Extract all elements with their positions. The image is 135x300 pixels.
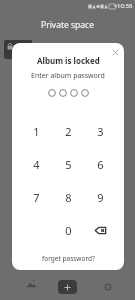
button[interactable]: 9 [84, 181, 116, 214]
button[interactable]: 0 [52, 214, 84, 247]
staticText: 8 [65, 190, 72, 205]
staticText: 10:56 [117, 2, 133, 10]
staticText: 0 [65, 223, 72, 238]
staticText: 4 [33, 157, 40, 172]
button[interactable]: Settings [94, 274, 122, 300]
button[interactable]: 1 [20, 115, 52, 148]
button[interactable]: 7 [20, 181, 52, 214]
staticText: 1 [33, 124, 40, 139]
staticText: 7 [33, 190, 40, 205]
button[interactable]: Add [58, 280, 77, 294]
staticText: Private space [41, 19, 94, 31]
staticText: 2 [65, 124, 72, 139]
staticText: Album is locked [37, 55, 100, 66]
button[interactable]: forget password? [36, 252, 101, 265]
button[interactable]: 4 [20, 148, 52, 181]
staticText: Enter album password [31, 71, 105, 81]
button[interactable]: 5 [52, 148, 84, 181]
staticText: 3 [97, 124, 104, 139]
staticText: 6 [97, 157, 104, 172]
button[interactable]: 2 [52, 115, 84, 148]
button[interactable]: Close [109, 46, 121, 58]
staticText: forget password? [42, 254, 95, 263]
button[interactable]: 3 [84, 115, 116, 148]
button[interactable]: Photos [17, 274, 45, 300]
button[interactable]: 6 [84, 148, 116, 181]
button[interactable]: 8 [52, 181, 84, 214]
button[interactable]: Backspace [84, 214, 116, 247]
staticText: 5 [65, 157, 72, 172]
staticText: 9 [97, 190, 104, 205]
